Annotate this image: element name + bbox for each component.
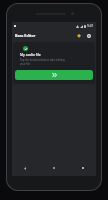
staticText: your file [20,62,30,66]
staticText: Tap the button below to start editing [20,58,65,62]
button[interactable]: My audio file [13,42,95,84]
button[interactable]: Recents [78,163,88,173]
button[interactable]: Premium [74,31,83,40]
button[interactable]: Settings [84,31,93,40]
staticText: 9:41 [87,24,94,28]
staticText: My audio file [20,52,41,57]
staticText: Bass Editor [15,33,36,38]
button[interactable]: Back [20,163,30,173]
button[interactable]: Start editing [15,70,93,80]
button[interactable]: Home [49,163,59,173]
